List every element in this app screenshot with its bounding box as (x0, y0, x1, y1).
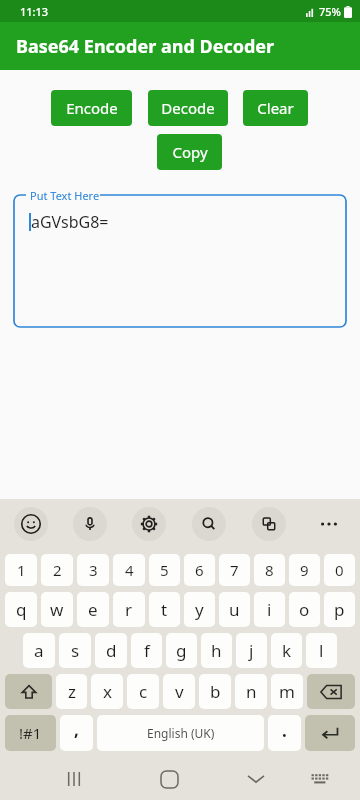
staticText: u (229, 598, 240, 621)
button[interactable]: 8 (254, 554, 285, 586)
button[interactable]: i (254, 592, 285, 627)
button[interactable]: o (289, 592, 320, 627)
button[interactable]: j (236, 633, 267, 668)
button[interactable]: Recent apps (52, 758, 96, 800)
button[interactable]: s (59, 633, 91, 668)
staticText: . (282, 719, 287, 742)
staticText: w (50, 598, 64, 621)
staticText: v (175, 680, 184, 703)
button[interactable]: z (56, 674, 87, 709)
button[interactable]: k (271, 633, 302, 668)
button[interactable]: l (306, 633, 337, 668)
staticText: c (139, 680, 148, 703)
staticText: f (144, 639, 150, 662)
button[interactable]: u (219, 592, 250, 627)
staticText: b (210, 680, 221, 703)
button[interactable]: x (91, 674, 123, 709)
staticText: 3 (89, 560, 98, 580)
staticText: 9 (300, 560, 309, 580)
staticText: Clear (257, 98, 294, 118)
staticText: English (UK) (147, 725, 215, 741)
staticText: Put Text Here (30, 188, 100, 203)
staticText: x (103, 680, 112, 703)
staticText: s (71, 639, 80, 662)
staticText: n (246, 680, 257, 703)
button[interactable]: 7 (219, 554, 250, 586)
staticText: j (249, 639, 254, 662)
staticText: m (279, 680, 295, 703)
button[interactable]: a (23, 633, 55, 668)
button[interactable]: Translate (252, 507, 286, 541)
button[interactable]: 1 (5, 554, 37, 586)
button[interactable]: y (184, 592, 215, 627)
button[interactable]: Home (147, 758, 191, 800)
staticText: z (68, 680, 76, 703)
staticText: 4 (125, 560, 134, 580)
staticText: k (282, 639, 292, 662)
staticText: d (106, 639, 117, 662)
button[interactable]: Copy (157, 134, 222, 170)
button[interactable]: d (95, 633, 127, 668)
button[interactable]: 3 (77, 554, 109, 586)
button[interactable]: Voice input (73, 507, 107, 541)
staticText: 1 (17, 560, 26, 580)
button[interactable]: Decode (148, 90, 228, 126)
staticText: 11:13 (20, 4, 49, 19)
button[interactable]: g (166, 633, 197, 668)
button[interactable]: !#1 (5, 715, 56, 751)
button[interactable]: r (113, 592, 145, 627)
button[interactable]: Search (192, 507, 226, 541)
staticText: 8 (265, 560, 274, 580)
button[interactable]: . (268, 715, 301, 751)
staticText: 0 (335, 560, 344, 580)
button[interactable]: p (324, 592, 355, 627)
button[interactable]: Enter (305, 715, 355, 751)
button[interactable]: f (131, 633, 162, 668)
button[interactable]: Encode (51, 90, 132, 126)
button[interactable]: h (201, 633, 232, 668)
staticText: g (176, 639, 187, 662)
button[interactable]: Backspace (307, 674, 355, 709)
button[interactable]: 6 (184, 554, 215, 586)
button[interactable]: c (127, 674, 159, 709)
button[interactable]: m (271, 674, 303, 709)
button[interactable]: 0 (324, 554, 355, 586)
button[interactable]: Hide keyboard (234, 758, 278, 800)
button[interactable]: 5 (149, 554, 180, 586)
button[interactable]: Emoji (14, 507, 48, 541)
button[interactable]: v (163, 674, 195, 709)
staticText: o (299, 598, 310, 621)
staticText: , (74, 718, 79, 741)
button[interactable]: t (149, 592, 180, 627)
button[interactable]: More options (312, 507, 346, 541)
staticText: Encode (66, 98, 118, 118)
button[interactable]: 4 (113, 554, 145, 586)
staticText: q (16, 598, 27, 621)
staticText: l (319, 639, 324, 662)
staticText: a (34, 639, 44, 662)
button[interactable]: Clear (243, 90, 308, 126)
staticText: p (334, 598, 345, 621)
button[interactable]: q (5, 592, 37, 627)
button[interactable]: 2 (41, 554, 73, 586)
button[interactable]: , (60, 715, 93, 751)
button[interactable]: English (UK) (97, 715, 264, 751)
staticText: Copy (172, 142, 208, 162)
staticText: 7 (230, 560, 239, 580)
button[interactable]: Keyboard settings (132, 507, 166, 541)
staticText: h (211, 639, 222, 662)
staticText: y (195, 598, 204, 621)
button[interactable]: e (77, 592, 109, 627)
button[interactable]: Change keyboard (298, 758, 342, 800)
staticText: !#1 (19, 723, 42, 743)
button[interactable]: 9 (289, 554, 320, 586)
button[interactable]: w (41, 592, 73, 627)
staticText: r (125, 598, 133, 621)
button[interactable]: n (235, 674, 267, 709)
button[interactable]: b (199, 674, 231, 709)
staticText: Decode (161, 98, 215, 118)
staticText: i (267, 598, 272, 621)
button[interactable]: Shift (5, 674, 52, 709)
button[interactable]: Put Text Here (14, 187, 346, 327)
staticText: 75% (319, 4, 341, 19)
